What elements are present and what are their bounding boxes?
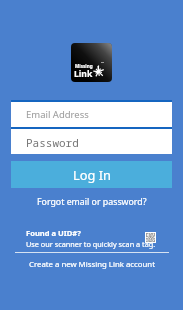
staticText: Log In xyxy=(73,166,111,183)
button[interactable]: Found a UID#? xyxy=(0,228,183,250)
button[interactable]: Create a new Missing Link account xyxy=(23,257,161,272)
staticText: Missing xyxy=(75,63,93,69)
button[interactable]: Scan a tag xyxy=(145,232,156,243)
staticText: Email Address xyxy=(26,108,89,121)
staticText: Forgot email or password? xyxy=(37,196,147,208)
staticText: Create a new Missing Link account xyxy=(29,259,155,270)
staticText: Link xyxy=(74,68,93,80)
button[interactable]: Forgot email or password? xyxy=(31,194,153,210)
button[interactable]: Password xyxy=(11,129,172,154)
staticText: Password xyxy=(26,135,79,150)
button[interactable]: Log In xyxy=(11,161,172,188)
button[interactable]: Email Address xyxy=(11,102,172,127)
staticText: Use our scanner to quickly scan a tag. xyxy=(26,239,156,249)
staticText: Found a UID#? xyxy=(26,228,81,238)
